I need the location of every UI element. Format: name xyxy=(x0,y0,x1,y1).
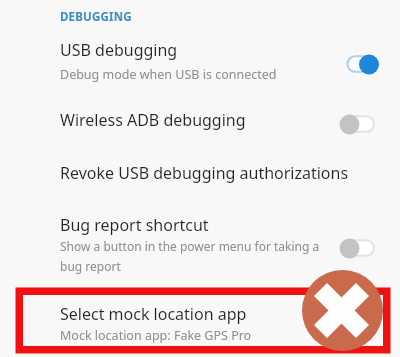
staticText: Mock location app: Fake GPS Pro xyxy=(60,327,252,344)
button[interactable]: Wireless ADB debugging xyxy=(0,108,400,140)
staticText: USB debugging xyxy=(60,39,178,61)
staticText: Revoke USB debugging authorizations xyxy=(60,162,349,184)
button[interactable] xyxy=(335,110,383,138)
button[interactable] xyxy=(335,50,383,78)
staticText: Show a button in the power menu for taki… xyxy=(60,238,320,275)
button[interactable] xyxy=(335,234,383,262)
staticText: Bug report shortcut xyxy=(60,214,209,236)
staticText: DEBUGGING xyxy=(60,9,132,25)
button[interactable]: Bug report shortcut xyxy=(0,212,400,280)
button[interactable]: USB debugging xyxy=(0,36,400,88)
button[interactable]: Select mock location app xyxy=(0,296,400,351)
staticText: Select mock location app xyxy=(60,303,247,325)
staticText: Wireless ADB debugging xyxy=(60,109,246,131)
button[interactable]: Revoke USB debugging authorizations xyxy=(0,160,400,192)
staticText: Debug mode when USB is connected xyxy=(60,66,277,83)
